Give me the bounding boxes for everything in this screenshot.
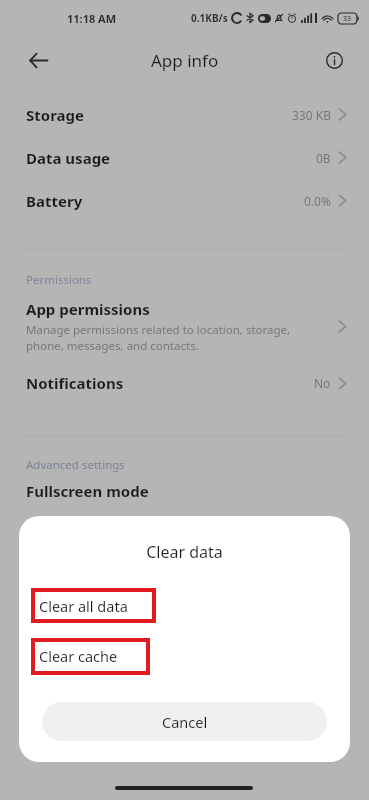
staticText: Clear data: [19, 541, 350, 563]
staticText: Clear all data: [39, 596, 128, 616]
staticText: Battery: [26, 191, 83, 211]
staticText: No: [314, 375, 331, 391]
button[interactable]: Data usage: [0, 136, 369, 179]
button[interactable]: App permissions: [0, 295, 369, 357]
staticText: App permissions: [26, 299, 150, 319]
button[interactable]: Back: [20, 42, 56, 78]
staticText: 33: [343, 14, 352, 24]
button[interactable]: About app: [317, 43, 351, 77]
staticText: 0.1KB/s: [191, 11, 228, 25]
button[interactable]: Notifications: [0, 365, 369, 401]
staticText: 330 KB: [292, 107, 331, 123]
staticText: Permissions: [26, 272, 92, 288]
button[interactable]: Battery: [0, 179, 369, 222]
button[interactable]: Storage: [0, 93, 369, 136]
button[interactable]: Cancel: [42, 702, 327, 741]
staticText: Clear cache: [39, 646, 118, 666]
button[interactable]: Clear all data: [19, 587, 350, 625]
staticText: Notifications: [26, 373, 124, 393]
staticText: Advanced settings: [26, 457, 125, 473]
staticText: 0B: [316, 150, 331, 166]
staticText: App info: [151, 49, 219, 72]
staticText: 0.0%: [304, 193, 331, 209]
staticText: Data usage: [26, 148, 111, 168]
button[interactable]: Clear cache: [19, 637, 350, 675]
staticText: Storage: [26, 105, 84, 125]
staticText: Fullscreen mode: [26, 481, 149, 501]
staticText: Cancel: [162, 712, 208, 732]
staticText: Manage permissions related to location, …: [26, 322, 291, 353]
staticText: 11:18 AM: [67, 11, 117, 26]
